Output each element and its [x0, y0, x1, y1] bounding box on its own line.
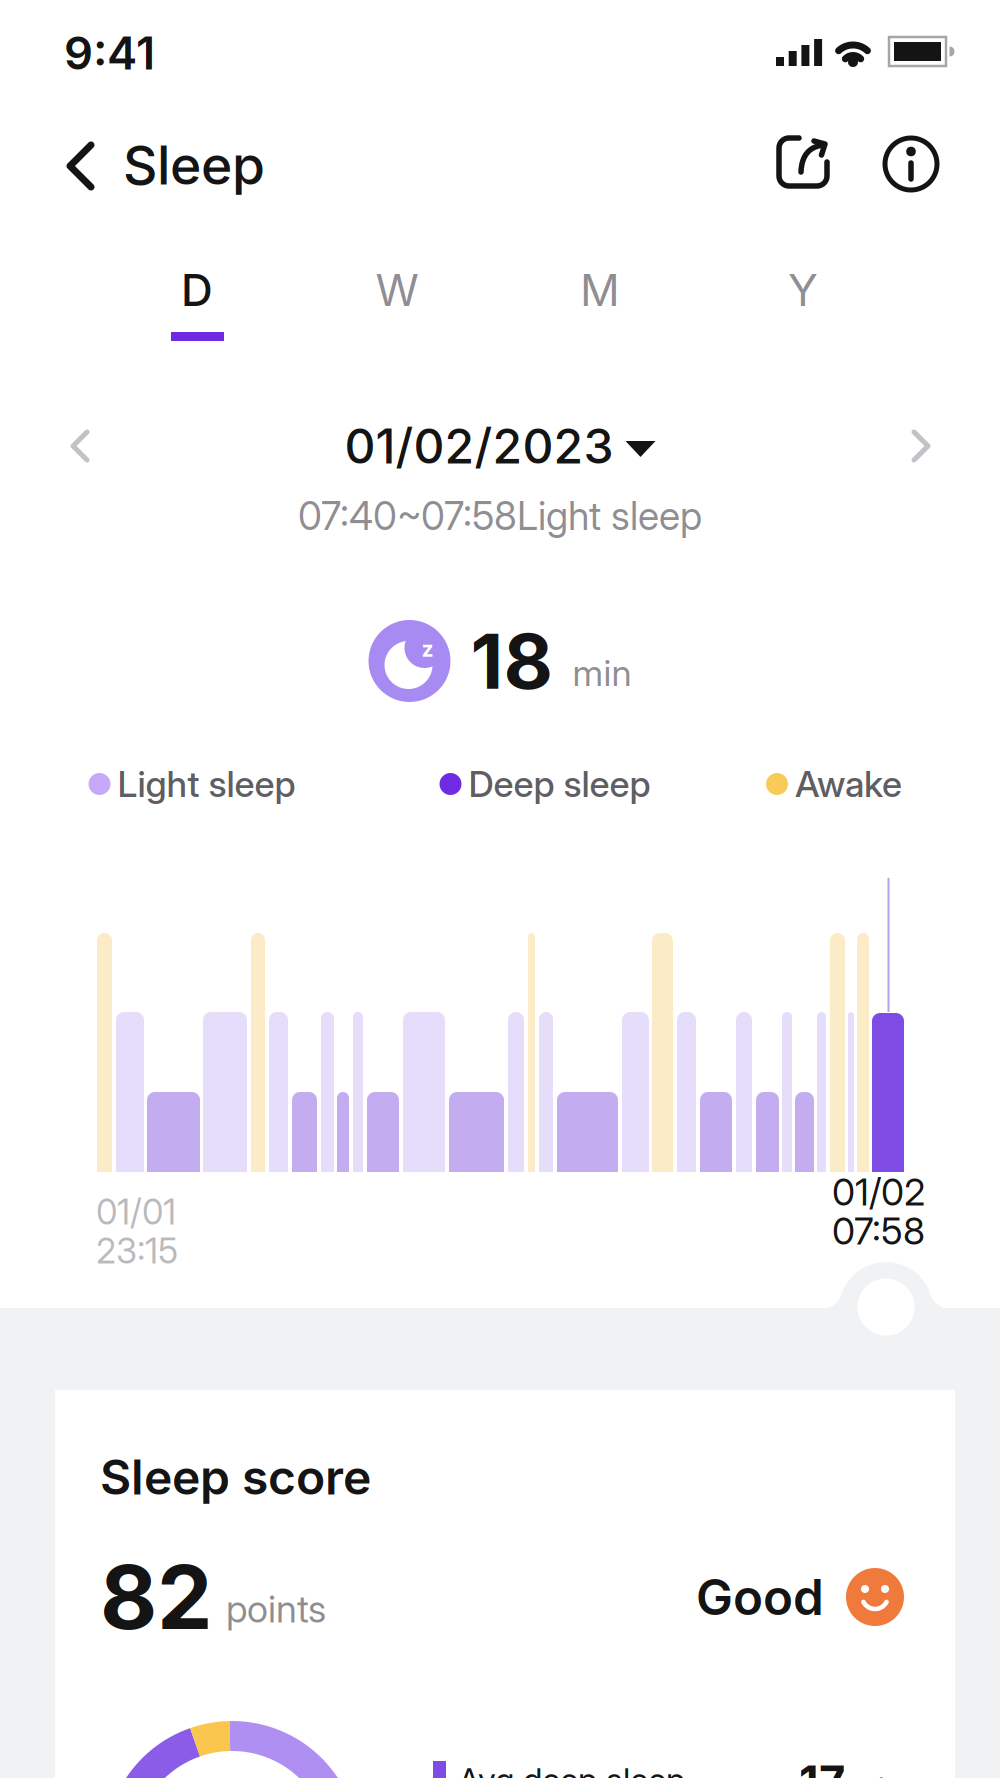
staticText: 82 — [100, 1545, 212, 1649]
staticText: 23:15 — [96, 1231, 178, 1271]
staticText: Sleep — [123, 133, 265, 196]
staticText: M — [580, 264, 620, 316]
staticText: 01/02 — [832, 1170, 925, 1214]
button[interactable]: Y — [743, 258, 863, 322]
staticText: 18 — [470, 616, 552, 706]
staticText: Awake — [795, 763, 902, 805]
staticText: min — [572, 652, 631, 694]
button[interactable]: 01/02/2023 — [344, 418, 655, 474]
staticText: 9:41 — [64, 26, 155, 80]
staticText: 01/01 — [96, 1192, 176, 1232]
button[interactable] — [911, 429, 931, 463]
staticText: Good — [696, 1568, 824, 1626]
button[interactable] — [70, 429, 90, 463]
staticText: Avg deep sleep — [458, 1760, 685, 1778]
staticText: 17 — [799, 1755, 845, 1778]
staticText: 01/02/2023 — [344, 418, 613, 474]
staticText: Light sleep — [117, 763, 295, 805]
button[interactable] — [67, 142, 95, 190]
staticText: min — [853, 1771, 902, 1778]
button[interactable]: W — [337, 258, 457, 322]
staticText: 07:40~07:58Light sleep — [298, 493, 702, 539]
button[interactable] — [775, 134, 831, 190]
staticText: Y — [788, 264, 818, 316]
button[interactable] — [881, 134, 941, 194]
staticText: 07:58 — [832, 1209, 925, 1253]
button[interactable]: M — [540, 258, 660, 322]
staticText: D — [181, 264, 213, 316]
staticText: Deep sleep — [468, 763, 650, 805]
staticText: W — [375, 264, 418, 316]
button[interactable]: D — [137, 258, 257, 322]
staticText: points — [226, 1587, 326, 1631]
staticText: Sleep score — [100, 1449, 371, 1505]
staticText: z — [421, 636, 433, 662]
